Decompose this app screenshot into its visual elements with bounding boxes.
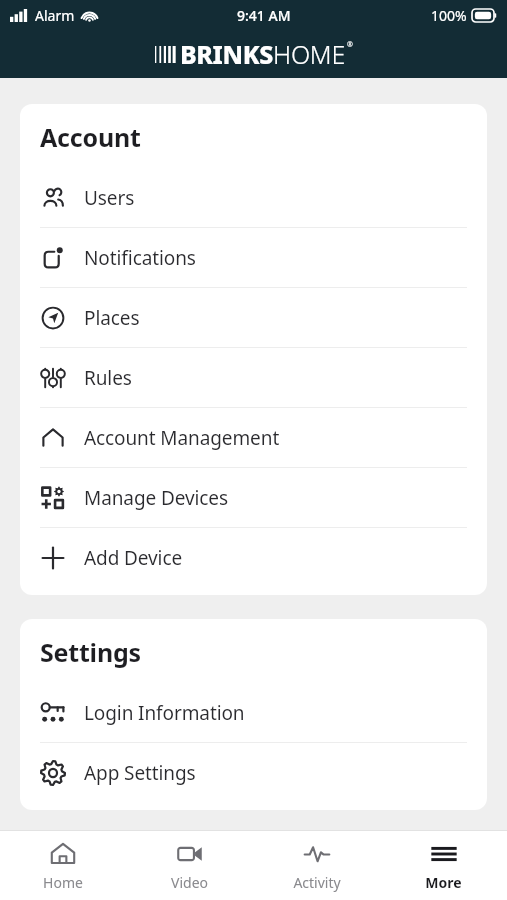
staticText: Manage Devices	[84, 485, 228, 511]
staticText: Users	[84, 185, 135, 211]
staticText: Notifications	[84, 245, 196, 271]
staticText: About	[40, 846, 116, 880]
button[interactable]: App Settings	[20, 743, 487, 802]
staticText: Add Device	[84, 545, 183, 571]
button[interactable]: Add Device	[20, 528, 487, 587]
staticText: Account Management	[84, 425, 280, 451]
button[interactable]: Home	[0, 831, 126, 900]
button[interactable]: Manage Devices	[20, 468, 487, 527]
button[interactable]: Activity	[253, 831, 380, 900]
staticText: 9:41 AM	[237, 6, 291, 25]
staticText: Video	[171, 873, 208, 892]
staticText: 100%	[431, 6, 467, 25]
staticText: Home	[43, 873, 83, 892]
staticText: BRINKS	[180, 37, 273, 71]
staticText: Activity	[293, 873, 341, 892]
staticText: HOME	[273, 37, 346, 71]
button[interactable]: Login Information	[20, 683, 487, 742]
button[interactable]: Notifications	[20, 228, 487, 287]
staticText: Account	[40, 120, 141, 154]
staticText: Rules	[84, 365, 132, 391]
button[interactable]: Places	[20, 288, 487, 347]
button[interactable]: Users	[20, 168, 487, 227]
staticText: App Settings	[84, 760, 196, 786]
staticText: ®	[347, 40, 353, 50]
staticText: Login Information	[84, 700, 245, 726]
staticText: Places	[84, 305, 140, 331]
button[interactable]: Rules	[20, 348, 487, 407]
staticText: Alarm	[35, 6, 75, 25]
button[interactable]: More	[380, 831, 507, 900]
staticText: More	[425, 873, 462, 892]
button[interactable]: Account Management	[20, 408, 487, 467]
staticText: Settings	[40, 635, 141, 669]
button[interactable]: Video	[126, 831, 253, 900]
